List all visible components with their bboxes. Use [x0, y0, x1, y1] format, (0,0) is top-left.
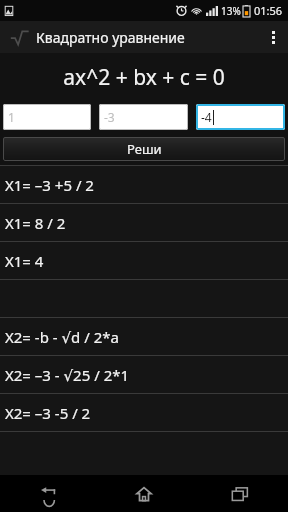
button[interactable]: X2= –3 - √25 / 2*1 [0, 356, 288, 393]
staticText: 1 [8, 109, 15, 125]
button[interactable]: -4 [196, 104, 285, 130]
button[interactable]: 1 [3, 104, 91, 130]
staticText: Реши [127, 140, 162, 158]
button[interactable]: X1= 8 / 2 [0, 204, 288, 241]
staticText: X2= –3 -5 / 2 [5, 403, 91, 423]
button[interactable]: X2= –3 -5 / 2 [0, 394, 288, 431]
staticText: X1= 4 [5, 251, 44, 271]
button[interactable]: Back [0, 475, 96, 512]
button[interactable]: Реши [3, 137, 285, 161]
button[interactable]: X1= –3 +5 / 2 [0, 166, 288, 203]
staticText: X2= –3 - √25 / 2*1 [5, 365, 130, 385]
button[interactable]: Recent apps [192, 475, 288, 512]
staticText: 13% [221, 4, 241, 18]
staticText: Квадратно уравнение [36, 28, 258, 47]
button[interactable]: X1= 4 [0, 242, 288, 279]
staticText: X1= –3 +5 / 2 [5, 175, 94, 195]
button[interactable]: X2= -b - √d / 2*a [0, 318, 288, 355]
staticText: ax^2 + bx + c = 0 [63, 63, 225, 92]
button[interactable]: App icon [9, 27, 29, 47]
button[interactable]: More options [258, 21, 288, 53]
staticText: X2= -b - √d / 2*a [5, 327, 119, 347]
staticText: -4 [201, 109, 212, 125]
staticText: 01:56 [254, 3, 283, 18]
button[interactable]: Home [96, 475, 192, 512]
button[interactable]: -3 [99, 104, 188, 130]
staticText: -3 [104, 109, 115, 125]
staticText: X1= 8 / 2 [5, 213, 66, 233]
